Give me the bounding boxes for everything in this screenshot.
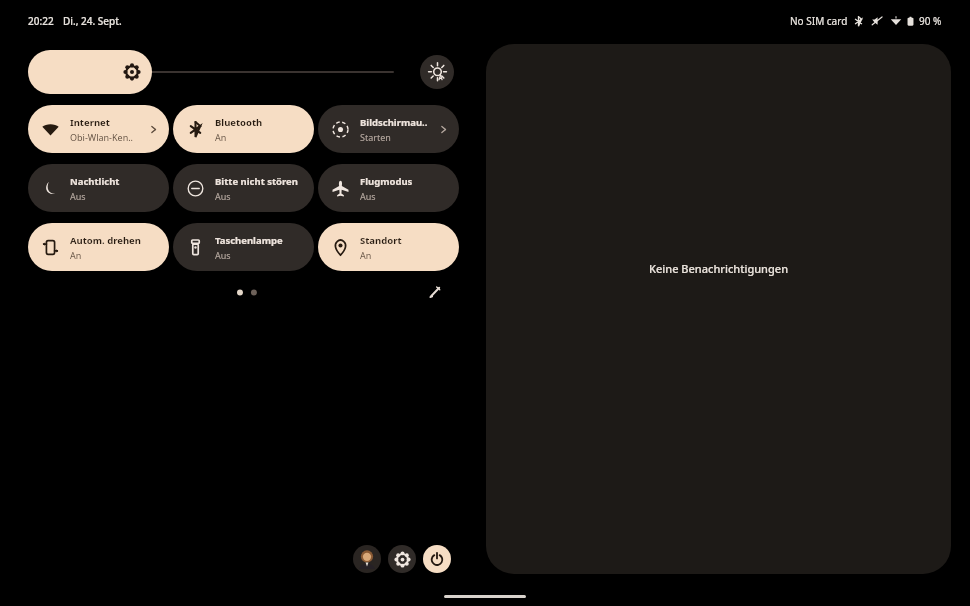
staticText: An [360,249,372,261]
staticText: Aus [70,190,86,202]
staticText: 90 % [919,14,942,28]
button[interactable]: Bitte nicht stören [173,164,314,212]
staticText: Aus [215,190,231,202]
button[interactable] [28,50,394,94]
staticText: Bildschirmau.. [360,116,428,129]
button[interactable]: Automatische Helligkeit [420,55,454,89]
button[interactable]: Internet [28,105,169,153]
button[interactable]: Nachtlicht [28,164,169,212]
staticText: Standort [360,234,402,247]
staticText: Aus [215,249,231,261]
staticText: Aus [360,190,376,202]
button[interactable]: Taschenlampe [173,223,314,271]
button[interactable]: Flugmodus [318,164,459,212]
staticText: Taschenlampe [215,234,283,247]
staticText: Di., 24. Sept. [63,14,122,28]
button[interactable]: Autom. drehen [28,223,169,271]
button[interactable]: Bearbeiten [424,281,446,303]
button[interactable]: Standort [318,223,459,271]
staticText: An [70,249,82,261]
button[interactable]: Nutzer [353,545,381,573]
staticText: Autom. drehen [70,234,141,247]
staticText: Nachtlicht [70,175,120,188]
staticText: Bitte nicht stören [215,175,298,188]
button[interactable]: Einstellungen [388,545,416,573]
staticText: Internet [70,116,110,129]
button[interactable]: Ein/Aus [423,545,451,573]
staticText: Obi-Wlan-Ken.. [70,131,134,143]
staticText: Starten [360,131,391,143]
staticText: Keine Benachrichtigungen [649,261,789,276]
staticText: Flugmodus [360,175,413,188]
staticText: No SIM card [790,14,848,28]
staticText: Bluetooth [215,116,263,129]
button[interactable]: Bildschirmau.. [318,105,459,153]
staticText: 20:22 [28,14,54,28]
button[interactable]: Bluetooth [173,105,314,153]
staticText: An [215,131,227,143]
